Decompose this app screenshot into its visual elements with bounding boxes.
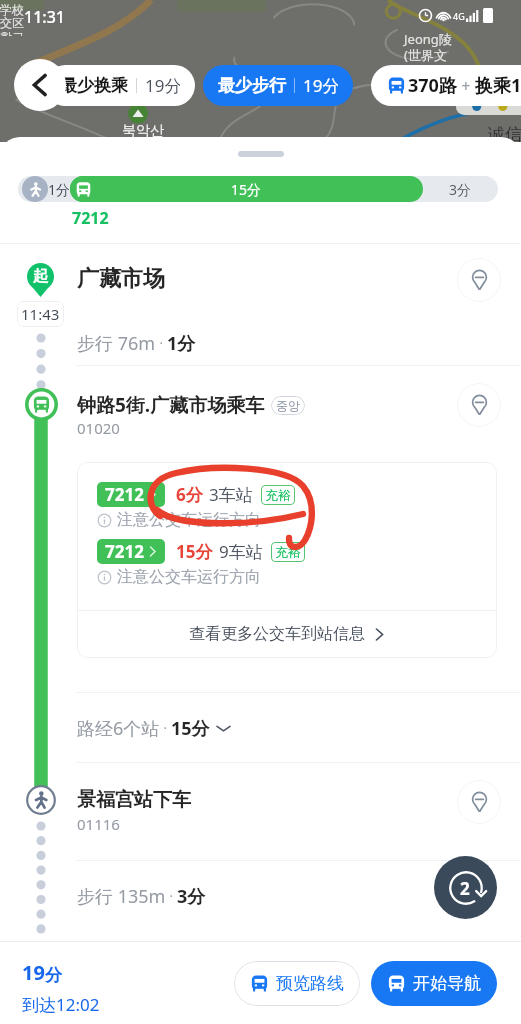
button[interactable]: 开始导航 [371,961,497,1006]
staticText: 3分 [449,180,472,199]
staticText: 3车站 [209,483,253,506]
button[interactable]: Refresh [434,856,497,919]
button[interactable]: Remove waypoint [457,383,501,427]
staticText: 查看更多公交车到站信息 [189,624,365,644]
button[interactable]: Remove waypoint [457,780,501,824]
button[interactable]: 370路 [371,65,521,106]
button[interactable]: 查看更多公交车到站信息 [77,611,497,657]
staticText: 换乘1次 [475,73,521,98]
staticText: 分 [45,965,62,986]
staticText: 3分 [177,884,206,909]
staticText: 步行 76m [77,331,156,356]
staticText: · [166,887,177,905]
button[interactable]: Back [14,59,66,111]
staticText: 7212 [72,207,109,229]
staticText: 钟路5街.广藏市场乘车 [77,392,265,418]
staticText: 370路 [408,73,457,98]
staticText: · [160,719,171,737]
staticText: 起 [33,267,48,286]
staticText: 북악산 [122,122,164,140]
staticText: 广藏市场 [77,265,165,293]
staticText: 15分 [171,716,210,741]
staticText: 9车站 [219,540,263,563]
staticText: 15分 [231,180,262,199]
staticText: 路经6个站 [77,716,160,741]
staticText: 充裕 [265,487,291,503]
staticText: 步行 135m [77,884,166,909]
staticText: + [457,75,475,97]
staticText: 15分 [176,540,213,563]
button[interactable]: 最少步行 [203,65,353,106]
staticText: 最少换乘 [60,75,128,96]
staticText: 19 [22,959,45,986]
button[interactable]: Remove waypoint [457,258,501,302]
staticText: 最少步行 [218,75,286,96]
staticText: 1分 [48,180,70,199]
staticText: 7212 [105,540,144,563]
button[interactable]: 预览路线 [234,961,360,1006]
staticText: 1分 [167,331,196,356]
staticText: 19分 [303,74,338,97]
staticText: 2 [460,877,470,900]
button[interactable]: 路经6个站 [77,693,521,763]
staticText: 学校 交区 학교 [0,2,24,36]
staticText: 6分 [176,483,203,506]
staticText: 到达12:02 [22,993,100,1016]
staticText: 19分 [145,74,180,97]
staticText: 01020 [77,418,120,438]
staticText: 注意公交车运行方向 [117,510,261,530]
staticText: 诚信女 [488,124,521,145]
staticText: 景福宫站下车 [77,788,191,812]
staticText: 중앙 [276,398,300,413]
staticText: Jeong陵 (世界文 [404,30,452,64]
staticText: 预览路线 [276,973,344,994]
staticText: · [156,334,167,352]
staticText: 01116 [77,814,120,834]
staticText: 开始导航 [413,973,481,994]
staticText: 注意公交车运行方向 [117,567,261,587]
button[interactable]: 最少换乘 [45,65,195,106]
staticText: 11:31 [24,6,65,28]
staticText: 充裕 [275,544,301,560]
staticText: 4G [453,10,465,22]
staticText: 7212 [105,483,144,506]
staticText: 11:43 [21,304,60,324]
